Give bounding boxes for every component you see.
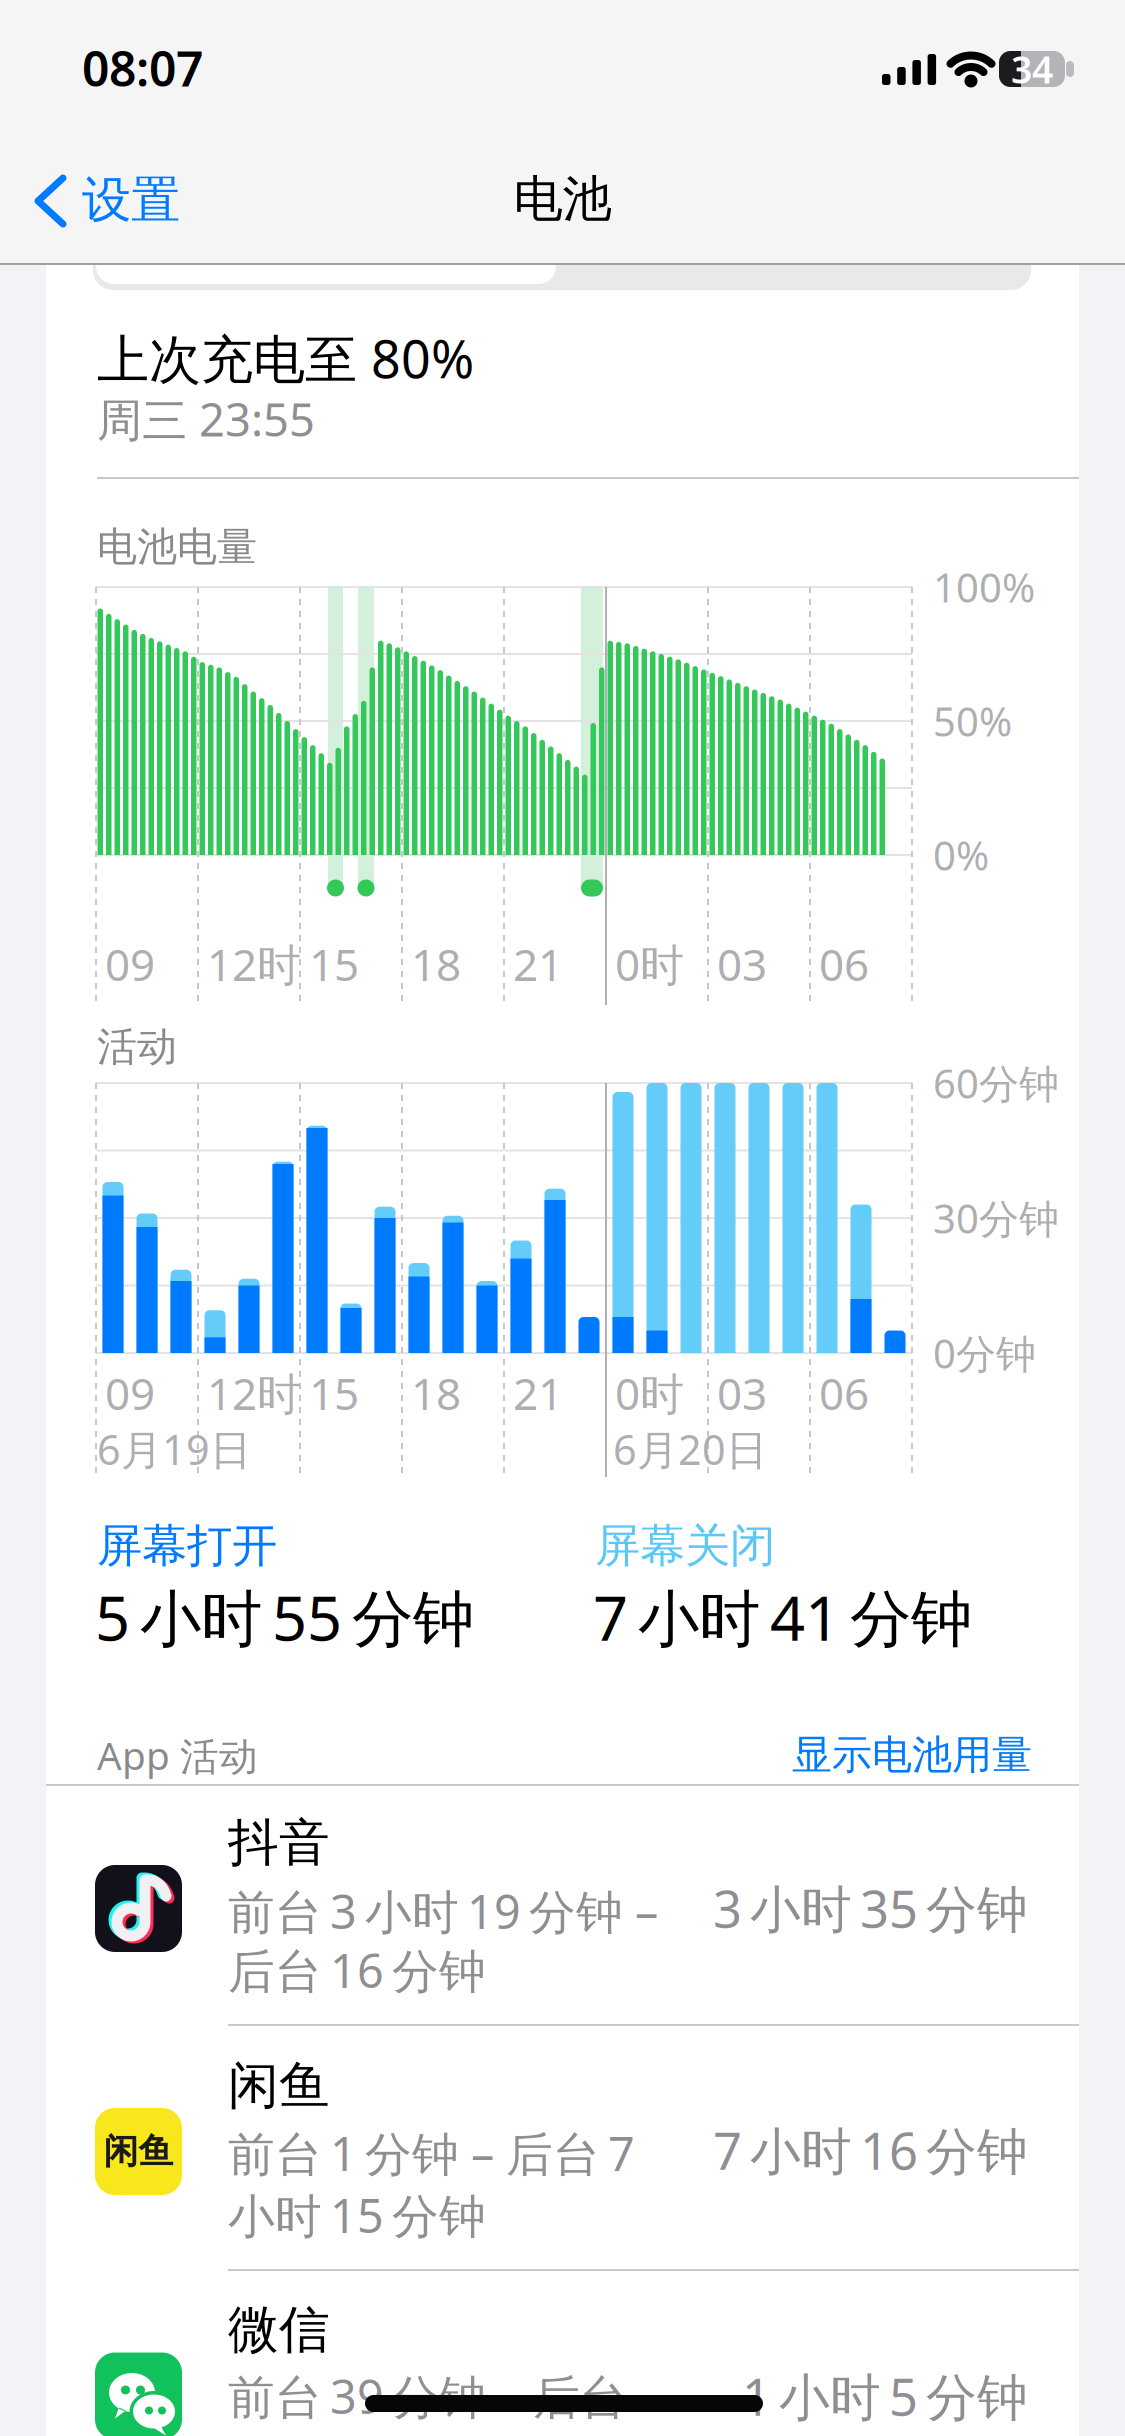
staticText: 显示电池用量 [792,1730,1032,1779]
staticText: App 活动 [97,1729,258,1781]
staticText: 18 [411,1364,461,1422]
staticText: 屏幕打开 [97,1518,277,1574]
staticText: 21 [513,1364,563,1422]
staticText: 06 [819,1364,869,1422]
staticText: 周三 23:55 [97,389,315,449]
staticText: 0% [933,828,989,881]
staticText: 50% [933,694,1012,747]
staticText: 0时 [615,935,684,993]
staticText: 5 小时 55 分钟 [95,1576,474,1658]
staticText: 3 小时 35 分钟 [713,1874,1028,1942]
staticText: 前台 3 小时 19 分钟 – [228,1880,658,1942]
staticText: 活动 [97,1022,177,1071]
staticText: 0分钟 [933,1326,1036,1379]
staticText: 34 [1011,44,1053,94]
staticText: 微信 [228,2299,330,2361]
staticText: 0时 [615,1364,684,1422]
staticText: 屏幕关闭 [595,1518,775,1574]
button[interactable]: 显示电池用量 [782,1725,1032,1785]
staticText: 06 [819,935,869,993]
staticText: 100% [933,560,1035,613]
button[interactable]: 闲鱼 [46,2025,1079,2270]
button[interactable]: 设置 [28,166,198,234]
staticText: 设置 [82,170,180,230]
staticText: 闲鱼 [103,2130,173,2173]
staticText: 闲鱼 [228,2055,330,2117]
staticText: 小时 15 分钟 [228,2184,486,2246]
staticText: 7 小时 16 分钟 [713,2116,1028,2184]
staticText: 09 [105,935,155,993]
staticText: 1 小时 5 分钟 [742,2362,1028,2430]
staticText: 前台 1 分钟 – 后台 7 [228,2122,635,2184]
staticText: 上次充电至 80% [97,323,474,393]
staticText: 6月20日 [613,1422,767,1476]
staticText: 03 [717,1364,767,1422]
staticText: 60分钟 [933,1056,1059,1109]
staticText: 09 [105,1364,155,1422]
staticText: 21 [513,935,563,993]
staticText: 后台 16 分钟 [228,1939,486,2001]
button[interactable]: 微信 [46,2270,1079,2436]
staticText: 6月19日 [97,1422,251,1476]
staticText: 15 [309,935,359,993]
staticText: 30分钟 [933,1191,1059,1244]
button[interactable] [93,230,1031,290]
staticText: 12时 [207,935,301,993]
staticText: 电池 [513,169,611,229]
staticText: 18 [411,935,461,993]
staticText: 7 小时 41 分钟 [593,1576,972,1658]
staticText: 03 [717,935,767,993]
staticText: 12时 [207,1364,301,1422]
staticText: 抖音 [228,1812,330,1874]
staticText: 电池电量 [97,522,257,571]
staticText: 15 [309,1364,359,1422]
button[interactable]: 抖音 [46,1786,1079,2025]
staticText: 前台 39 分钟 – 后台 [228,2365,627,2427]
staticText: 08:07 [82,36,203,100]
